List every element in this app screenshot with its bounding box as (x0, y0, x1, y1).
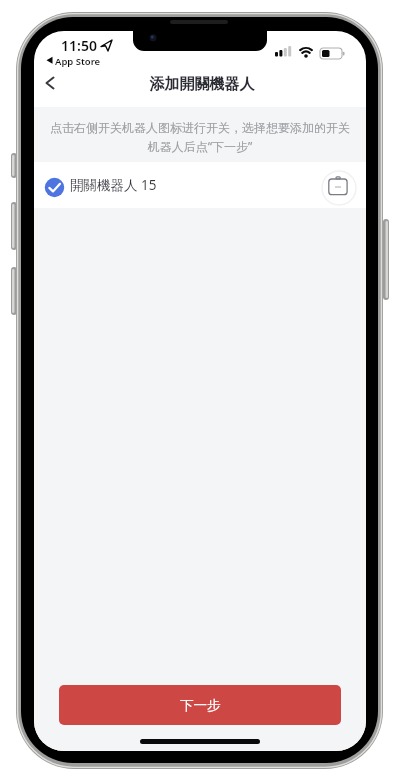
staticText: 添加開關機器人 (36, 75, 366, 94)
staticText: App Store (55, 55, 101, 68)
staticText: 11:50 (61, 36, 97, 55)
staticText: 点击右侧开关机器人图标进行开关，选择想要添加的开关 机器人后点“下一步” (34, 120, 366, 154)
button[interactable] (36, 69, 70, 99)
button[interactable]: 開關機器人 15 (34, 162, 366, 208)
staticText: 下一步 (180, 697, 221, 714)
button[interactable]: 下一步 (59, 685, 341, 725)
staticText: 開關機器人 15 (70, 176, 157, 194)
